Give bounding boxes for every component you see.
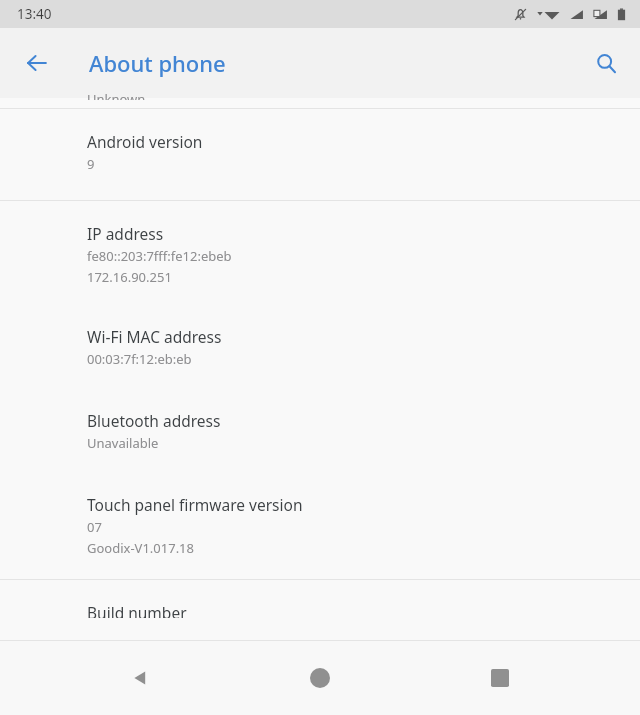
staticText: IP address	[87, 223, 164, 244]
button[interactable]: Unknown	[0, 98, 640, 108]
button[interactable]: IP address	[0, 201, 640, 306]
button[interactable]: Home	[296, 654, 344, 702]
staticText: Build number	[87, 602, 187, 618]
staticText: Touch panel firmware version	[87, 494, 303, 515]
button[interactable]: Search	[582, 39, 630, 87]
staticText: Goodix-V1.017.18	[87, 539, 194, 557]
button[interactable]: Build number	[0, 580, 640, 640]
staticText: Wi-Fi MAC address	[87, 326, 222, 347]
button[interactable]: Bluetooth address	[0, 390, 640, 474]
staticText: 00:03:7f:12:eb:eb	[87, 350, 192, 368]
button[interactable]: Back	[116, 654, 164, 702]
button[interactable]: Recent apps	[476, 654, 524, 702]
staticText: 9	[87, 155, 95, 173]
button[interactable]: Touch panel firmware version	[0, 474, 640, 579]
staticText: Bluetooth address	[87, 410, 221, 431]
button[interactable]: Back	[13, 39, 61, 87]
button[interactable]: Wi-Fi MAC address	[0, 306, 640, 390]
staticText: Android version	[87, 131, 203, 152]
button[interactable]: Android version	[0, 109, 640, 200]
staticText: Unavailable	[87, 434, 159, 452]
staticText: 172.16.90.251	[87, 268, 172, 286]
staticText: Unknown	[87, 90, 146, 100]
staticText: About phone	[89, 48, 226, 78]
staticText: 13:40	[17, 5, 52, 23]
staticText: 07	[87, 518, 102, 536]
staticText: fe80::203:7fff:fe12:ebeb	[87, 247, 232, 265]
